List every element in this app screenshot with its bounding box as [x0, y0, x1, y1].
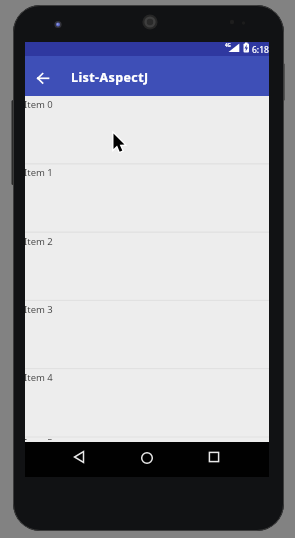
button[interactable] — [206, 449, 222, 465]
button[interactable] — [139, 450, 155, 466]
button[interactable]: Item 1 — [25, 164, 269, 232]
staticText: Item 4 — [25, 371, 53, 384]
staticText: 6:18 — [252, 44, 269, 56]
staticText: Item 2 — [25, 235, 53, 248]
staticText: Item 1 — [25, 166, 53, 179]
staticText: Item 5 — [25, 436, 53, 440]
staticText: List-AspectJ — [71, 69, 149, 86]
button[interactable]: Item 0 — [25, 96, 269, 164]
button[interactable]: Item 2 — [25, 233, 269, 301]
button[interactable]: Item 4 — [25, 369, 269, 437]
staticText: 4G — [225, 42, 231, 48]
button[interactable] — [72, 449, 88, 465]
button[interactable]: Item 5 — [25, 438, 269, 442]
button[interactable] — [33, 68, 53, 84]
staticText: Item 0 — [25, 98, 53, 111]
staticText: Item 3 — [25, 303, 53, 316]
button[interactable]: Item 3 — [25, 301, 269, 369]
